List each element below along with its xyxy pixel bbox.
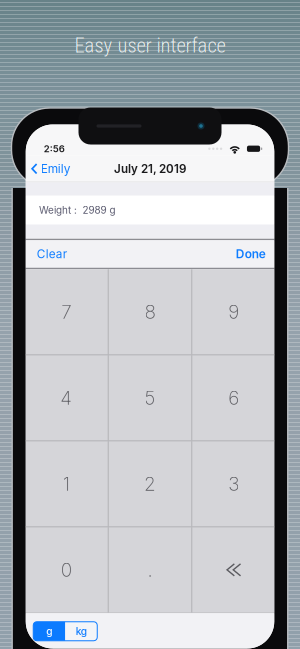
staticText: Emily (41, 162, 71, 176)
staticText: July 21, 2019 (114, 162, 186, 176)
staticText: 3 (228, 472, 239, 495)
button[interactable]: g (33, 622, 65, 641)
staticText: 9 (228, 300, 239, 323)
staticText: Easy user interface (74, 33, 225, 58)
button[interactable]: 8 (109, 269, 191, 354)
staticText: 8 (144, 300, 155, 323)
staticText: 2989 g (82, 204, 115, 216)
staticText: Done (236, 247, 266, 261)
staticText: 7 (61, 300, 71, 323)
staticText: Weight : (39, 204, 77, 216)
button[interactable]: Backspace (192, 527, 275, 612)
staticText: 1 (63, 472, 70, 495)
staticText: g (46, 625, 52, 637)
button[interactable]: Done (225, 240, 274, 268)
staticText: 2 (144, 472, 156, 495)
staticText: Clear (37, 247, 67, 261)
button[interactable]: 1 (25, 441, 108, 526)
button[interactable]: 5 (109, 355, 191, 440)
staticText: 5 (144, 386, 155, 409)
button[interactable]: 4 (25, 355, 108, 440)
staticText: kg (76, 625, 87, 637)
staticText: 2:56 (44, 143, 65, 154)
button[interactable]: Emily (26, 156, 79, 182)
button[interactable]: 0 (25, 527, 108, 612)
button[interactable]: Clear (26, 240, 78, 268)
button[interactable]: 3 (192, 441, 275, 526)
staticText: 6 (228, 386, 239, 409)
button[interactable]: 2 (109, 441, 191, 526)
button[interactable]: 9 (192, 269, 275, 354)
button[interactable]: 7 (25, 269, 108, 354)
staticText: 4 (60, 386, 72, 409)
button[interactable]: 6 (192, 355, 275, 440)
button[interactable]: kg (65, 622, 97, 641)
staticText: . (147, 558, 152, 581)
staticText: 0 (61, 558, 72, 581)
